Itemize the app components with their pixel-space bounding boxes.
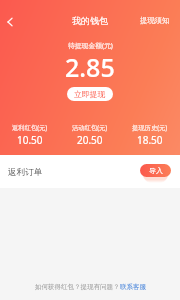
staticText: 18.50 [137,133,163,147]
staticText: 提现历史(元) [132,123,168,132]
button[interactable]: Back [0,9,23,35]
staticText: 返利订单 [8,167,43,178]
button[interactable]: 立即提现 [67,87,113,101]
staticText: 如何获得红包？提现有问题？ [35,283,120,291]
button[interactable]: 提现须知 [130,10,180,31]
staticText: 10.50 [17,133,43,147]
staticText: 20.50 [77,133,103,147]
staticText: 联系客服 [120,283,146,291]
staticText: 返利红包(元) [12,123,48,132]
button[interactable]: 联系客服 [120,283,146,291]
staticText: 立即提现 [74,89,106,99]
staticText: 导入 [149,166,163,175]
staticText: 活动红包(元) [72,123,108,132]
button[interactable]: 导入 [140,164,171,183]
staticText: 2.85 [65,50,115,84]
staticText: 提现须知 [140,16,170,25]
staticText: 我的钱包 [72,15,108,26]
staticText: 待提现金额(元) [68,41,113,50]
